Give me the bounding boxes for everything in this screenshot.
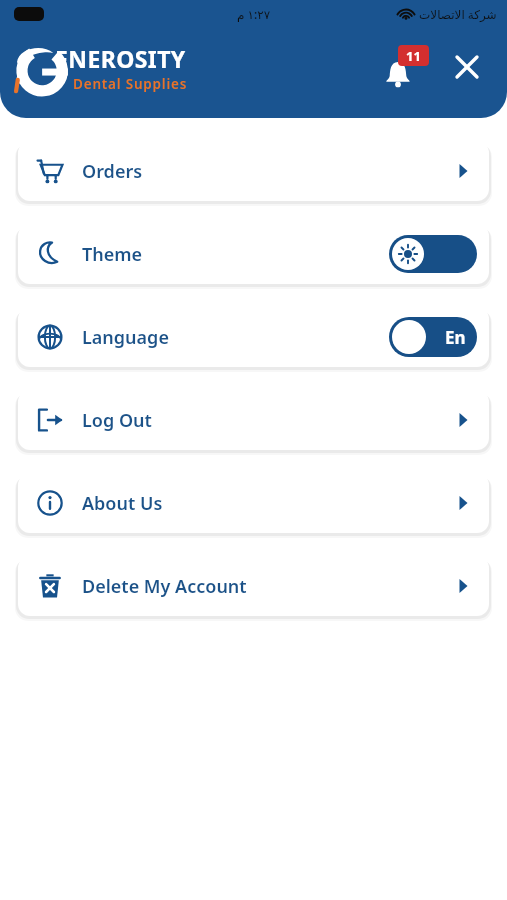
staticText: Dental Supplies — [73, 75, 188, 93]
staticText: Delete My Account — [82, 574, 247, 599]
staticText: 11 — [406, 47, 421, 65]
button[interactable]: Toggle theme — [389, 235, 477, 273]
staticText: Log Out — [82, 408, 152, 433]
button[interactable]: Close — [447, 47, 487, 87]
button[interactable]: Toggle language — [389, 317, 477, 357]
staticText: ENEROSITY — [55, 43, 186, 74]
button[interactable]: Orders — [18, 141, 489, 201]
button[interactable]: About Us — [18, 473, 489, 533]
staticText: Theme — [82, 242, 143, 267]
button[interactable]: Delete My Account — [18, 556, 489, 616]
button[interactable]: Theme — [18, 224, 489, 284]
staticText: ١:٢٧ م — [237, 6, 271, 22]
staticText: About Us — [82, 491, 163, 516]
button[interactable]: Log Out — [18, 390, 489, 450]
staticText: Language — [82, 325, 169, 350]
staticText: Orders — [82, 159, 143, 184]
button[interactable]: Language — [18, 307, 489, 367]
staticText: En — [445, 326, 466, 349]
button[interactable]: Notifications — [383, 45, 429, 89]
staticText: شركة الاتصالات — [419, 6, 497, 22]
